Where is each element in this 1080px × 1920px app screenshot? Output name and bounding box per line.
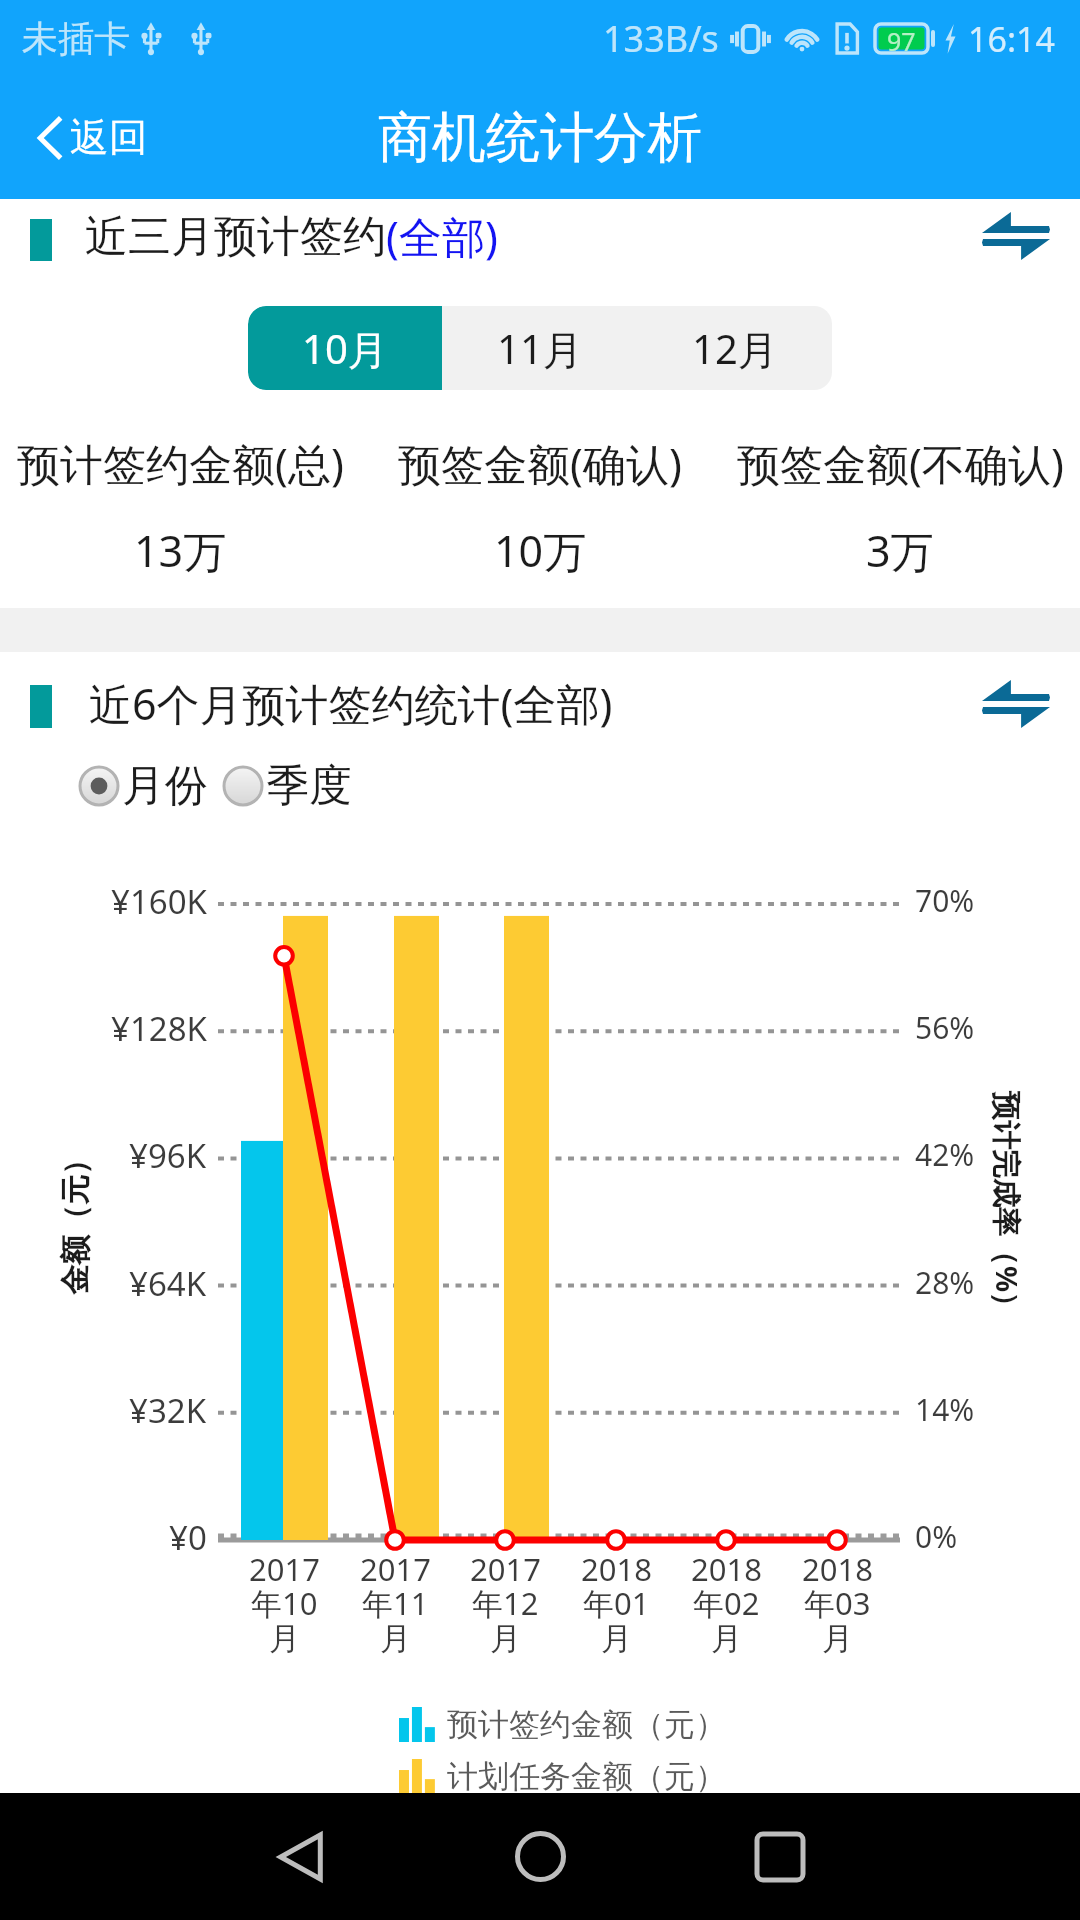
staticText: 97 bbox=[887, 24, 916, 53]
button[interactable]: Switch data source bbox=[978, 668, 1054, 740]
button[interactable]: 10月 bbox=[248, 306, 442, 390]
staticText: ¥128K bbox=[111, 1006, 207, 1051]
staticText: 2018 bbox=[691, 1548, 762, 1590]
button[interactable]: Switch data source bbox=[978, 200, 1054, 272]
staticText: 月 bbox=[490, 1619, 521, 1658]
staticText: 月 bbox=[601, 1619, 632, 1658]
staticText: 月 bbox=[711, 1619, 742, 1658]
staticText: 2017 bbox=[249, 1548, 320, 1590]
staticText: 2018 bbox=[581, 1548, 652, 1590]
staticText: ¥96K bbox=[129, 1133, 207, 1178]
staticText: 10月 bbox=[302, 321, 388, 376]
button[interactable]: 11月 bbox=[442, 306, 637, 390]
staticText: 返回 bbox=[70, 113, 148, 162]
staticText: ¥32K bbox=[129, 1388, 207, 1433]
button[interactable]: 预计签约金额（元） bbox=[399, 1705, 726, 1744]
staticText: 预计签约金额（元） bbox=[447, 1705, 726, 1744]
button[interactable]: 月份 bbox=[78, 759, 208, 813]
staticText: 12月 bbox=[692, 321, 778, 376]
staticText: 季度 bbox=[266, 759, 352, 813]
staticText: (全部) bbox=[386, 207, 498, 266]
staticText: 70% bbox=[915, 880, 975, 921]
staticText: 42% bbox=[915, 1134, 975, 1175]
staticText: 年12 bbox=[472, 1582, 539, 1624]
staticText: 月 bbox=[269, 1619, 300, 1658]
staticText: 13万 bbox=[134, 521, 227, 580]
staticText: 2017 bbox=[470, 1548, 541, 1590]
staticText: 2017 bbox=[360, 1548, 431, 1590]
button[interactable]: 计划任务金额（元） bbox=[399, 1757, 726, 1796]
staticText: 3万 bbox=[866, 521, 934, 580]
button[interactable]: 12月 bbox=[637, 306, 832, 390]
staticText: ¥0 bbox=[169, 1515, 207, 1560]
staticText: 56% bbox=[915, 1007, 975, 1048]
staticText: 预签金额(确认) bbox=[398, 434, 682, 493]
button[interactable]: Recent apps bbox=[720, 1793, 840, 1920]
staticText: 11月 bbox=[497, 321, 583, 376]
staticText: 16:14 bbox=[968, 16, 1055, 62]
staticText: 预签金额(不确认) bbox=[737, 434, 1064, 493]
staticText: ¥160K bbox=[111, 879, 207, 924]
staticText: 年02 bbox=[693, 1582, 760, 1624]
staticText: 年03 bbox=[804, 1582, 871, 1624]
staticText: 月份 bbox=[122, 759, 208, 813]
staticText: 133B/s bbox=[603, 14, 719, 63]
staticText: 近6个月预计签约统计(全部) bbox=[89, 674, 613, 733]
staticText: 月 bbox=[380, 1619, 411, 1658]
staticText: 10万 bbox=[494, 521, 587, 580]
staticText: 14% bbox=[915, 1389, 975, 1430]
staticText: 计划任务金额（元） bbox=[447, 1757, 726, 1796]
staticText: 年11 bbox=[362, 1582, 429, 1624]
staticText: 预计签约金额(总) bbox=[17, 434, 344, 493]
button[interactable]: 季度 bbox=[222, 759, 352, 813]
button[interactable]: 返回 bbox=[14, 95, 168, 180]
staticText: 商机统计分析 bbox=[378, 104, 702, 172]
staticText: 近三月预计签约 bbox=[85, 210, 386, 264]
staticText: 未插卡 bbox=[22, 16, 130, 61]
staticText: 年10 bbox=[251, 1582, 318, 1624]
button[interactable]: Back bbox=[240, 1793, 360, 1920]
staticText: 年01 bbox=[583, 1582, 650, 1624]
staticText: 2018 bbox=[802, 1548, 873, 1590]
staticText: 月 bbox=[822, 1619, 853, 1658]
button[interactable]: Home bbox=[480, 1793, 600, 1920]
staticText: 0% bbox=[915, 1516, 958, 1557]
staticText: ¥64K bbox=[129, 1261, 207, 1306]
staticText: 28% bbox=[915, 1262, 975, 1303]
